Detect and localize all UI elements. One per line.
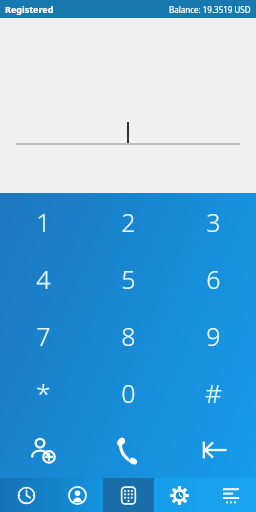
button[interactable]: 2: [86, 193, 171, 250]
button[interactable]: Contacts: [52, 478, 103, 512]
staticText: 5: [121, 262, 136, 296]
button[interactable]: Add contact: [0, 421, 86, 478]
button[interactable]: 9: [171, 307, 256, 364]
staticText: 3: [206, 205, 221, 239]
staticText: 7: [36, 319, 51, 353]
staticText: Registered: [5, 3, 54, 15]
button[interactable]: 8: [86, 307, 171, 364]
staticText: 2: [121, 205, 136, 239]
button[interactable]: 6: [171, 250, 256, 307]
staticText: 6: [206, 262, 221, 296]
button[interactable]: *: [0, 364, 86, 421]
staticText: Balance: 19.3519 USD: [169, 4, 251, 15]
staticText: 0: [121, 376, 136, 410]
button[interactable]: 0: [86, 364, 171, 421]
button[interactable]: 7: [0, 307, 86, 364]
button[interactable]: 4: [0, 250, 86, 307]
button[interactable]: Call: [86, 421, 171, 478]
staticText: *: [36, 375, 51, 410]
button[interactable]: Settings: [154, 478, 205, 512]
button[interactable]: 1: [0, 193, 86, 250]
staticText: 1: [36, 205, 51, 239]
staticText: 9: [206, 319, 221, 353]
staticText: 8: [121, 319, 136, 353]
button[interactable]: 5: [86, 250, 171, 307]
staticText: 4: [36, 262, 51, 296]
button[interactable]: 3: [171, 193, 256, 250]
button[interactable]: #: [171, 364, 256, 421]
staticText: #: [205, 375, 222, 410]
button[interactable]: Backspace: [171, 421, 256, 478]
button[interactable]: Call history: [0, 478, 52, 512]
button[interactable]: More: [205, 478, 256, 512]
button[interactable]: Keypad: [103, 478, 154, 512]
